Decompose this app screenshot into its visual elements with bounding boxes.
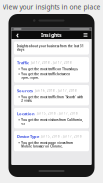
staticText: You get the most traffic from 'Search' w…	[21, 95, 83, 102]
staticText: You get the most traffic on Thursdays.	[21, 67, 78, 71]
button[interactable]: Sources	[14, 85, 89, 105]
staticText: Location	[17, 111, 35, 116]
staticText: Traffic	[17, 60, 29, 65]
staticText: Jul 17, 2018 - Jul 17, 2018	[31, 61, 72, 64]
staticText: Jun 16, 2018 - Jul 17, 2018	[35, 89, 77, 92]
staticText: You get the most visitors from Californi…	[21, 118, 83, 125]
staticText: Jul 15, 2018 - Jul 17, 2018	[37, 112, 78, 115]
staticText: ‹	[16, 30, 19, 40]
staticText: Device Type	[17, 134, 39, 139]
staticText: Insights	[41, 31, 62, 39]
staticText: Sources	[17, 88, 33, 93]
staticText: Insights about your business from the la…	[17, 44, 84, 52]
staticText: View your insights in one place	[2, 3, 100, 11]
button[interactable]: Device Type	[14, 131, 89, 151]
button[interactable]: Location	[14, 108, 89, 128]
staticText: You get the most traffic between 9pm-10p…	[21, 72, 70, 79]
button[interactable]: Back	[12, 31, 22, 39]
staticText: Jul 15, 2018 - Jul 17, 2018	[41, 135, 82, 138]
button[interactable]: Traffic	[14, 57, 89, 82]
staticText: You get the most page views from Mobile …	[21, 141, 73, 148]
button[interactable]: Menu	[80, 31, 90, 39]
